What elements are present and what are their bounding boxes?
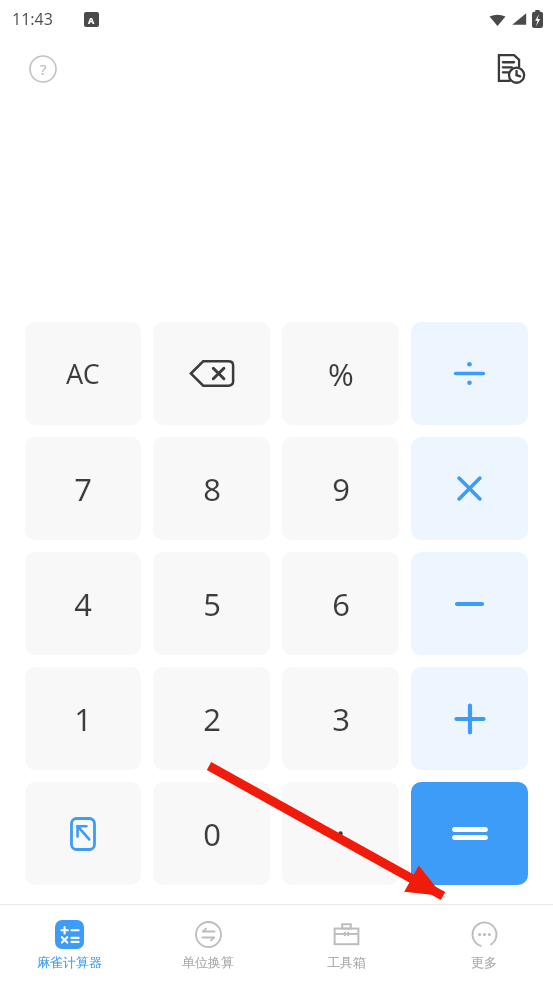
button[interactable]: History	[485, 44, 533, 92]
staticText: 11:43	[12, 8, 53, 30]
button[interactable]: Multiply	[411, 437, 528, 540]
button[interactable]: 2	[153, 667, 270, 770]
button[interactable]: Decimal point	[282, 782, 399, 885]
button[interactable]: Divide	[411, 322, 528, 425]
button[interactable]: 工具箱	[277, 905, 415, 984]
staticText: 麻雀计算器	[37, 954, 102, 970]
staticText: 更多	[471, 954, 497, 970]
button[interactable]: 7	[25, 437, 141, 540]
button[interactable]: Plus	[411, 667, 528, 770]
button[interactable]: Expand	[25, 782, 141, 885]
staticText: 2	[203, 698, 221, 740]
button[interactable]: 5	[153, 552, 270, 655]
button[interactable]: 9	[282, 437, 399, 540]
staticText: 6	[332, 583, 350, 625]
button[interactable]: Help	[26, 52, 60, 86]
staticText: %	[328, 353, 354, 395]
staticText: ?	[40, 59, 47, 79]
staticText: 工具箱	[327, 954, 366, 970]
staticText: 0	[203, 813, 221, 855]
staticText: 5	[203, 583, 221, 625]
staticText: 4	[74, 583, 92, 625]
button[interactable]: 8	[153, 437, 270, 540]
button[interactable]: Equals	[411, 782, 528, 885]
button[interactable]: 单位换算	[139, 905, 277, 984]
button[interactable]: AC	[25, 322, 141, 425]
staticText: 3	[332, 698, 350, 740]
button[interactable]: 4	[25, 552, 141, 655]
button[interactable]: Backspace	[153, 322, 270, 425]
button[interactable]: 1	[25, 667, 141, 770]
staticText: 9	[332, 468, 350, 510]
button[interactable]: 更多	[415, 905, 553, 984]
button[interactable]: Minus	[411, 552, 528, 655]
button[interactable]: 6	[282, 552, 399, 655]
staticText: 单位换算	[182, 954, 234, 970]
button[interactable]: 麻雀计算器	[0, 905, 139, 984]
staticText: 7	[74, 468, 92, 510]
staticText: A	[88, 14, 95, 26]
button[interactable]: 0	[153, 782, 270, 885]
staticText: 1	[74, 698, 92, 740]
staticText: AC	[66, 355, 100, 392]
button[interactable]: %	[282, 322, 399, 425]
button[interactable]: 3	[282, 667, 399, 770]
staticText: 8	[203, 468, 221, 510]
